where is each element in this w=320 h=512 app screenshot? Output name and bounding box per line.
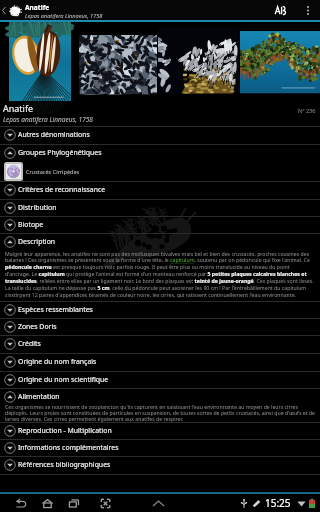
staticText: Informations complémentaires bbox=[18, 443, 119, 452]
button[interactable]: Origine du nom scientifique bbox=[0, 371, 320, 388]
button[interactable]: Photo 2 bbox=[79, 22, 157, 101]
button[interactable]: More options bbox=[299, 0, 317, 20]
staticText: Reproduction - Multiplication bbox=[18, 426, 112, 435]
staticText: Critères de reconnaissance bbox=[18, 185, 106, 194]
button[interactable]: Translate bbox=[269, 0, 291, 20]
staticText: Crédits bbox=[18, 339, 41, 348]
staticText: Anatife bbox=[3, 102, 34, 114]
staticText: 15:25 bbox=[265, 496, 291, 510]
staticText: Lepas anatifera Linnaeus, 1758 bbox=[3, 115, 93, 124]
staticText: Espèces ressemblantes bbox=[18, 305, 93, 314]
staticText: Origine du nom français bbox=[18, 357, 97, 366]
button[interactable]: Crustacés Cirripèdes bbox=[0, 161, 320, 181]
button[interactable]: Distribution bbox=[0, 199, 320, 216]
button[interactable]: Alimentation bbox=[0, 388, 320, 405]
staticText: Alimentation bbox=[18, 392, 60, 401]
button[interactable]: Expand bbox=[150, 494, 166, 512]
staticText: Zones Doris bbox=[18, 322, 57, 331]
button[interactable]: Espèces ressemblantes bbox=[0, 301, 320, 318]
staticText: Lepas anatifera Linnaeus, 1758 bbox=[25, 12, 103, 20]
staticText: Description bbox=[18, 237, 56, 246]
staticText: Ces organismes se nourrissent de zooplan… bbox=[5, 403, 316, 422]
button[interactable]: Photo 1 bbox=[9, 22, 71, 101]
button[interactable]: Home bbox=[41, 494, 54, 512]
button[interactable]: Back bbox=[0, 0, 8, 20]
button[interactable]: Autres dénominations bbox=[0, 126, 320, 143]
staticText: Autres dénominations bbox=[18, 130, 90, 139]
button[interactable]: Crédits bbox=[0, 335, 320, 352]
button[interactable]: Reproduction - Multiplication bbox=[0, 422, 320, 439]
button[interactable]: Photo 3 bbox=[158, 22, 239, 101]
button[interactable]: Biotope bbox=[0, 216, 320, 233]
button[interactable]: Back bbox=[15, 494, 28, 512]
staticText: Origine du nom scientifique bbox=[18, 375, 109, 384]
button[interactable]: Références bibliographiques bbox=[0, 456, 320, 473]
button[interactable]: Recent apps bbox=[68, 494, 81, 512]
staticText: N° 236 bbox=[298, 107, 316, 114]
button[interactable]: Screenshot bbox=[99, 494, 112, 512]
staticText: Malgré leur apparence, les anatifes ne s… bbox=[5, 250, 316, 299]
button[interactable]: Zones Doris bbox=[0, 318, 320, 335]
button[interactable]: Origine du nom français bbox=[0, 353, 320, 370]
staticText: Références bibliographiques bbox=[18, 460, 111, 469]
staticText: Crustacés Cirripèdes bbox=[26, 168, 80, 175]
staticText: Distribution bbox=[18, 203, 57, 212]
staticText: Biotope bbox=[18, 220, 44, 229]
staticText: Anatife bbox=[25, 3, 50, 12]
button[interactable]: Critères de reconnaissance bbox=[0, 181, 320, 198]
button[interactable]: Description bbox=[0, 233, 320, 250]
button[interactable]: Informations complémentaires bbox=[0, 439, 320, 456]
staticText: Groupes Phylogénétiques bbox=[18, 148, 102, 157]
button[interactable]: Groupes Phylogénétiques bbox=[0, 144, 320, 161]
button[interactable]: Photo 4 bbox=[240, 22, 320, 101]
